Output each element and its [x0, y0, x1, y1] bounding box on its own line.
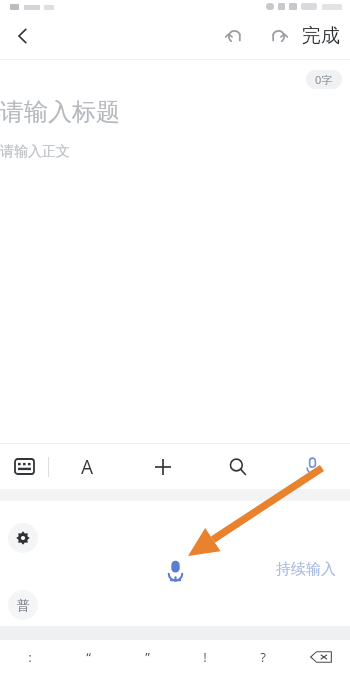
- button[interactable]: Back: [0, 13, 46, 59]
- button[interactable]: Undo: [212, 14, 256, 58]
- staticText: ?: [260, 648, 266, 666]
- button[interactable]: ”: [118, 640, 176, 673]
- button[interactable]: !: [176, 640, 234, 673]
- staticText: A: [81, 454, 94, 480]
- staticText: :: [28, 648, 32, 666]
- button[interactable]: Voice input: [275, 444, 350, 489]
- staticText: 0字: [315, 72, 333, 87]
- staticText: 完成: [302, 24, 340, 48]
- button[interactable]: 0字: [306, 70, 342, 89]
- button[interactable]: 持续输入: [272, 556, 340, 583]
- staticText: 持续输入: [276, 560, 336, 579]
- button[interactable]: :: [0, 640, 59, 673]
- staticText: 普: [17, 597, 30, 613]
- staticText: 请输入正文: [0, 143, 70, 161]
- button[interactable]: Keyboard: [0, 444, 48, 489]
- button[interactable]: ?: [234, 640, 292, 673]
- button[interactable]: Settings: [8, 523, 38, 553]
- staticText: “: [86, 648, 91, 666]
- staticText: ”: [145, 648, 150, 666]
- staticText: !: [203, 648, 207, 666]
- button[interactable]: 普: [8, 590, 38, 620]
- button[interactable]: Insert: [125, 444, 200, 489]
- button[interactable]: Redo: [256, 14, 300, 58]
- button[interactable]: Text style: [49, 444, 125, 489]
- button[interactable]: Start voice input: [147, 542, 203, 598]
- button[interactable]: Backspace: [292, 640, 350, 673]
- button[interactable]: “: [59, 640, 118, 673]
- staticText: 请输入标题: [0, 97, 120, 127]
- button[interactable]: Search: [200, 444, 275, 489]
- button[interactable]: 完成: [302, 13, 340, 59]
